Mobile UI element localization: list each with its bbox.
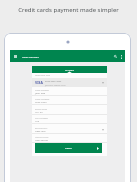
button[interactable]: Search bbox=[112, 51, 119, 62]
button[interactable]: CARD HOLDER bbox=[32, 88, 107, 98]
staticText: John Doe - expires 10/22 bbox=[45, 84, 66, 86]
button[interactable]: AMOUNT DUE bbox=[32, 135, 107, 145]
staticText: EXPIRY DATE bbox=[35, 108, 47, 111]
button[interactable]: VISA bbox=[32, 78, 107, 87]
staticText: Cards Payment bbox=[22, 55, 39, 58]
staticText: CVV NUMBER bbox=[35, 117, 48, 120]
button[interactable]: SUBMIT bbox=[35, 143, 102, 153]
staticText: 4242 4242 bbox=[35, 100, 47, 103]
staticText: SUBMIT bbox=[65, 147, 72, 149]
staticText: New York bbox=[35, 129, 46, 132]
staticText: 4242 4242 4242 bbox=[45, 80, 62, 83]
staticText: BILLING CITY bbox=[35, 127, 48, 130]
staticText: AMOUNT DUE bbox=[35, 136, 49, 139]
button[interactable]: Open navigation menu bbox=[12, 51, 19, 62]
staticText: VISA bbox=[35, 80, 43, 85]
staticText: 123 bbox=[35, 119, 40, 122]
staticText: MY CARDS bbox=[65, 69, 74, 71]
button[interactable]: EXPIRY DATE bbox=[32, 107, 107, 117]
staticText: Credit cards payment made simpler bbox=[18, 6, 119, 14]
staticText: CARD HOLDER bbox=[35, 89, 49, 92]
button[interactable]: CVV NUMBER bbox=[32, 116, 107, 126]
staticText: USD 250.00 bbox=[35, 138, 48, 141]
button[interactable]: MY CARDS bbox=[32, 66, 107, 73]
staticText: 10 / 22 bbox=[35, 110, 43, 113]
staticText: Select your card bbox=[35, 74, 50, 77]
button[interactable]: CARD NUMBER bbox=[32, 97, 107, 107]
button[interactable]: BILLING CITY bbox=[32, 126, 107, 136]
button[interactable]: More options bbox=[119, 51, 124, 62]
staticText: John Doe bbox=[35, 91, 46, 94]
staticText: CARD NUMBER bbox=[35, 98, 50, 101]
